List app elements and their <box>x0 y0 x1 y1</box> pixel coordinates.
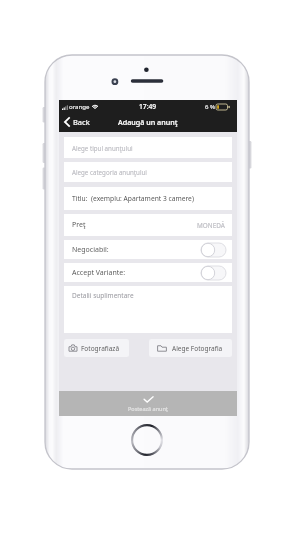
staticText: Fotografiază <box>81 344 120 353</box>
button[interactable]: Alege Fotografia <box>149 339 232 357</box>
staticText: 17:49 <box>139 102 157 111</box>
staticText: Negociabil: <box>72 245 109 255</box>
staticText: Alege Fotografia <box>172 344 223 353</box>
staticText: Back <box>73 117 90 127</box>
button[interactable]: Accept Variante: <box>64 263 232 282</box>
staticText: Alege tipul anunţului <box>72 144 133 152</box>
staticText: Detalii suplimentare <box>72 291 134 300</box>
staticText: Adaugă un anunţ <box>118 117 178 127</box>
button[interactable]: Detalii suplimentare <box>64 286 232 333</box>
button[interactable]: Alege categoria anunţului <box>64 162 232 182</box>
other: Negociabil: <box>201 243 226 257</box>
button[interactable]: Back <box>61 115 93 129</box>
staticText: Titlu: (exemplu: Apartament 3 camere) <box>72 194 194 203</box>
button[interactable]: Negociabil: <box>64 240 232 259</box>
staticText: Preţ <box>72 220 86 230</box>
button[interactable]: Titlu: (exemplu: Apartament 3 camere) <box>64 187 232 210</box>
button[interactable]: Fotografiază <box>64 339 129 357</box>
staticText: 6 % <box>205 102 216 110</box>
staticText: MONEDĂ <box>197 221 225 230</box>
staticText: orange <box>69 102 90 110</box>
staticText: Accept Variante: <box>72 268 126 278</box>
button[interactable]: Preţ <box>64 214 232 236</box>
button[interactable]: Alege tipul anunţului <box>64 137 232 158</box>
staticText: Postează anunţ <box>128 405 168 412</box>
button[interactable]: Postează anunţ <box>59 391 237 416</box>
staticText: Alege categoria anunţului <box>72 168 147 176</box>
other: Accept Variante: <box>201 266 226 280</box>
